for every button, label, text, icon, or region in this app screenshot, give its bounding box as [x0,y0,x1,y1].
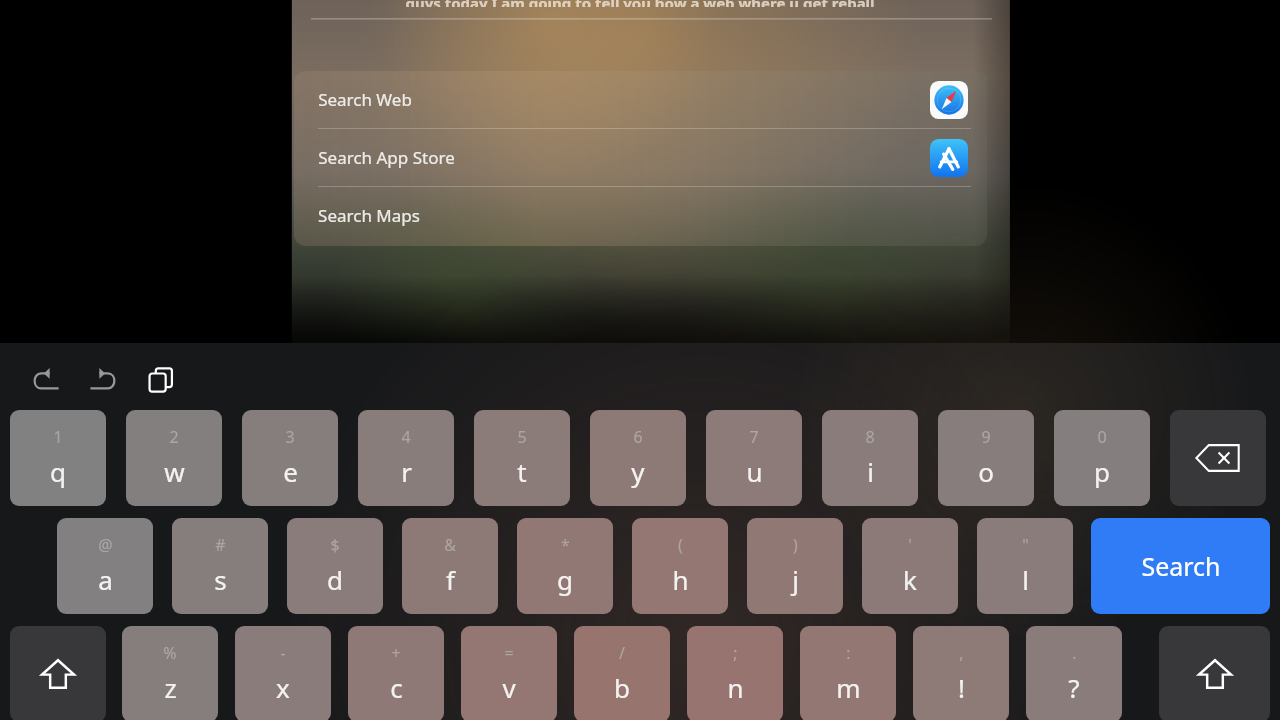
staticText: 6 [633,426,643,448]
button[interactable]: 5 [474,410,570,506]
staticText: ( [678,534,683,556]
staticText: o [978,454,994,489]
staticText: q [50,454,66,489]
staticText: s [214,562,227,597]
staticText: x [276,670,290,705]
staticText: j [792,562,799,597]
staticText: p [1094,454,1110,489]
button[interactable]: * [517,518,613,614]
staticText: g [557,562,573,597]
staticText: , [959,642,964,664]
staticText: c [390,670,403,705]
button[interactable]: Shift [1159,626,1270,720]
staticText: guys today I am going to tell you how a … [405,0,875,7]
staticText: r [401,454,412,489]
button[interactable]: . [1026,626,1122,720]
staticText: Search Maps [318,204,420,227]
staticText: & [444,534,456,556]
button[interactable]: Search Web [294,71,987,128]
staticText: v [502,670,516,705]
staticText: @ [98,534,113,556]
staticText: 0 [1097,426,1107,448]
staticText: m [836,670,861,705]
staticText: z [164,670,177,705]
staticText: # [215,534,226,556]
button[interactable]: Paste [139,358,183,402]
staticText: w [164,454,185,489]
staticText: ) [793,534,798,556]
staticText: a [98,562,113,597]
button[interactable]: % [122,626,218,720]
button[interactable]: 8 [822,410,918,506]
button[interactable]: Search Maps [294,187,987,244]
staticText: - [280,642,286,664]
staticText: . [1072,642,1077,664]
button[interactable]: = [461,626,557,720]
staticText: n [727,670,744,705]
staticText: = [504,642,514,664]
button[interactable]: 6 [590,410,686,506]
button[interactable]: 1 [10,410,106,506]
staticText: b [614,670,630,705]
staticText: / [619,642,625,664]
button[interactable]: / [574,626,670,720]
staticText: e [283,454,298,489]
button[interactable]: 9 [938,410,1034,506]
staticText: 7 [749,426,759,448]
staticText: 5 [517,426,527,448]
button[interactable]: Shift [10,626,106,720]
button[interactable]: 0 [1054,410,1150,506]
button[interactable]: $ [287,518,383,614]
button[interactable]: 4 [358,410,454,506]
staticText: y [631,454,645,489]
button[interactable]: : [800,626,896,720]
button[interactable]: , [913,626,1009,720]
staticText: 1 [53,426,63,448]
staticText: l [1022,562,1029,597]
button[interactable]: Search App Store [294,129,987,186]
button[interactable]: Undo [24,358,68,402]
staticText: * [561,534,570,556]
staticText: Search App Store [318,146,455,169]
button[interactable]: ; [687,626,783,720]
staticText: 4 [401,426,411,448]
button[interactable]: " [977,518,1073,614]
button[interactable]: ' [862,518,958,614]
button[interactable]: ) [747,518,843,614]
staticText: f [446,562,455,597]
staticText: ' [908,534,912,556]
button[interactable]: - [235,626,331,720]
staticText: Search Web [318,88,412,111]
staticText: % [163,642,177,664]
staticText: 9 [981,426,991,448]
button[interactable]: ( [632,518,728,614]
button[interactable]: Search [1091,518,1270,614]
staticText: u [746,454,763,489]
staticText: i [867,454,874,489]
staticText: 2 [169,426,179,448]
staticText: d [327,562,343,597]
button[interactable]: Backspace [1170,410,1266,506]
button[interactable]: 3 [242,410,338,506]
button[interactable]: @ [57,518,153,614]
staticText: t [517,454,527,489]
staticText: 3 [285,426,295,448]
button[interactable]: Redo [81,358,125,402]
staticText: : [846,642,851,664]
staticText: h [672,562,689,597]
staticText: k [903,562,917,597]
staticText: Search [1141,549,1221,583]
button[interactable]: & [402,518,498,614]
button[interactable]: + [348,626,444,720]
staticText: ? [1068,670,1080,705]
button[interactable]: # [172,518,268,614]
button[interactable]: 7 [706,410,802,506]
staticText: $ [330,534,340,556]
staticText: ! [958,670,965,705]
button[interactable]: 2 [126,410,222,506]
staticText: 8 [865,426,875,448]
staticText: + [391,642,401,664]
staticText: " [1022,534,1029,556]
staticText: ; [733,642,738,664]
